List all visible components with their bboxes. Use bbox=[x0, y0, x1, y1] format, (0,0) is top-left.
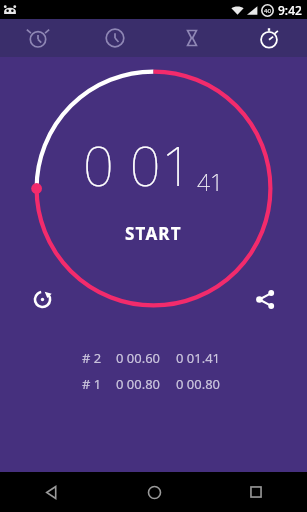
button[interactable]: Reset bbox=[22, 279, 62, 319]
staticText: 9:42 bbox=[278, 2, 302, 18]
staticText: # 2 bbox=[82, 349, 116, 367]
staticText: 0 00.60 bbox=[116, 349, 176, 367]
button[interactable]: # 2 bbox=[0, 345, 307, 371]
button[interactable]: Alarm bbox=[0, 19, 76, 57]
button[interactable]: START bbox=[111, 218, 196, 249]
staticText: # 1 bbox=[82, 375, 116, 393]
staticText: 41 bbox=[197, 166, 224, 197]
button[interactable]: # 1 bbox=[0, 371, 307, 397]
staticText: 40 bbox=[264, 7, 271, 15]
button[interactable]: Recent apps bbox=[205, 472, 307, 512]
staticText: 0 01.41 bbox=[176, 349, 221, 367]
staticText: START bbox=[125, 222, 182, 245]
staticText: 0 00.80 bbox=[116, 375, 176, 393]
button[interactable]: Home bbox=[103, 472, 205, 512]
button[interactable]: Back bbox=[0, 472, 103, 512]
staticText: 0 00.80 bbox=[176, 375, 221, 393]
button[interactable]: Share bbox=[245, 279, 285, 319]
button[interactable]: Clock bbox=[76, 19, 153, 57]
staticText: 0 01 bbox=[83, 128, 194, 202]
button[interactable]: Timer bbox=[153, 19, 230, 57]
button[interactable]: Stopwatch bbox=[230, 19, 307, 57]
